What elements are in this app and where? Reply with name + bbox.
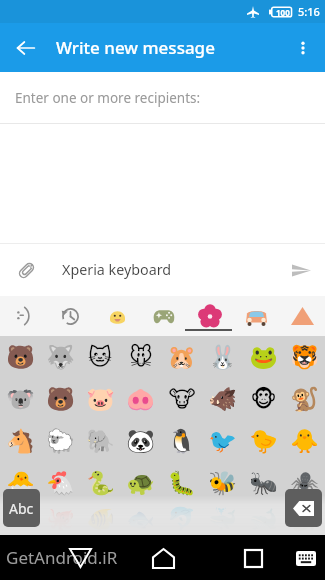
staticText: Abc [9, 499, 34, 518]
button[interactable]: 🐰 [202, 336, 243, 378]
staticText: 🐤 [249, 428, 278, 455]
staticText: 🐒 [290, 386, 319, 413]
button[interactable]: 🐠 [80, 504, 120, 535]
staticText: 🐣 [6, 470, 35, 497]
button[interactable]: Emoji category 5 [233, 296, 279, 336]
staticText: 🐠 [86, 506, 115, 533]
button[interactable]: Keyboard [288, 540, 324, 576]
button[interactable]: 🐵 [243, 378, 284, 420]
button[interactable]: 🐜 [243, 462, 284, 504]
staticText: 🐻 [46, 386, 75, 413]
button[interactable]: 🐱 [80, 336, 120, 378]
button[interactable]: 🐴 [0, 420, 40, 462]
button[interactable]: Back [10, 32, 42, 64]
button[interactable]: 🐗 [202, 378, 243, 420]
staticText: 100 [276, 7, 290, 18]
staticText: 🐚 [6, 506, 35, 533]
button[interactable]: 🐷 [80, 378, 120, 420]
button[interactable]: 🐚 [0, 504, 40, 535]
button[interactable]: 🐻 [40, 378, 80, 420]
staticText: 🐼 [126, 428, 155, 455]
staticText: 🐔 [46, 470, 75, 497]
button[interactable]: 🐦 [202, 420, 243, 462]
staticText: 🐴 [6, 428, 35, 455]
button[interactable]: Attach [10, 254, 42, 286]
button[interactable]: 🐭 [120, 336, 161, 378]
button[interactable]: 🐬 [161, 504, 202, 535]
staticText: 🐝 [208, 470, 237, 497]
button[interactable]: 🐘 [80, 420, 120, 462]
button[interactable]: 🐧 [161, 420, 202, 462]
staticText: 🐷 [86, 386, 115, 413]
button[interactable]: 🐊 [284, 504, 325, 535]
button[interactable]: Emoji category 2 [94, 296, 141, 336]
staticText: 🐜 [249, 470, 278, 497]
staticText: 🐸 [249, 344, 278, 371]
staticText: 🐦 [208, 428, 237, 455]
staticText: 🐭 [129, 344, 153, 371]
button[interactable]: 🐽 [120, 378, 161, 420]
button[interactable]: 🐝 [202, 462, 243, 504]
staticText: 🐍 [86, 470, 115, 497]
button[interactable]: Abc [3, 489, 40, 527]
staticText: 🐛 [167, 470, 196, 497]
staticText: 🐹 [167, 344, 196, 371]
button[interactable]: 🐼 [120, 420, 161, 462]
staticText: 🐧 [167, 428, 196, 455]
staticText: 🐗 [208, 386, 237, 413]
button[interactable]: 🐔 [40, 462, 80, 504]
staticText: 🐺 [46, 344, 75, 371]
button[interactable]: 🐛 [161, 462, 202, 504]
button[interactable]: 🐨 [0, 378, 40, 420]
staticText: 🐟 [126, 506, 155, 533]
button[interactable]: Emoji category 6 [279, 296, 325, 336]
button[interactable]: More options [287, 32, 319, 64]
button[interactable]: 🐺 [40, 336, 80, 378]
button[interactable]: 🐹 [161, 336, 202, 378]
staticText: Write new message [56, 36, 215, 59]
staticText: 🐙 [46, 506, 75, 533]
button[interactable]: Emoji category 4 [187, 296, 233, 336]
staticText: GetAndroid.iR [6, 546, 118, 569]
staticText: 🐰 [208, 344, 237, 371]
button[interactable]: 🐣 [0, 462, 40, 504]
button[interactable]: 🐥 [284, 420, 325, 462]
button[interactable]: 🐢 [120, 462, 161, 504]
button[interactable]: Emoji category 0 [0, 296, 47, 336]
staticText: 🐥 [290, 428, 319, 455]
staticText: 🐑 [46, 428, 75, 455]
button[interactable]: Send [285, 254, 317, 286]
staticText: 🐢 [126, 470, 155, 497]
button[interactable]: Home [145, 540, 181, 576]
button[interactable]: 🐤 [243, 420, 284, 462]
staticText: 🐳 [208, 506, 237, 533]
staticText: 🐬 [167, 506, 196, 533]
button[interactable]: 🐸 [243, 336, 284, 378]
button[interactable]: Recents [235, 540, 271, 576]
button[interactable]: 🐑 [40, 420, 80, 462]
staticText: 🐽 [126, 386, 155, 413]
staticText: 🐮 [168, 386, 196, 413]
button[interactable]: Emoji category 1 [47, 296, 94, 336]
button[interactable]: 🐮 [161, 378, 202, 420]
staticText: 🐘 [86, 428, 115, 455]
staticText: 5:16 [298, 4, 320, 19]
button[interactable]: Emoji category 3 [141, 296, 187, 336]
staticText: 🕷️ [290, 470, 319, 497]
button[interactable]: Enter one or more recipients: [0, 72, 325, 124]
staticText: 🐱 [88, 344, 112, 371]
button[interactable]: 🐻 [0, 336, 40, 378]
staticText: Enter one or more recipients: [15, 89, 201, 107]
button[interactable]: 🐯 [284, 336, 325, 378]
button[interactable]: Backspace [285, 489, 322, 527]
button[interactable]: 🐍 [80, 462, 120, 504]
button[interactable]: 🕷️ [284, 462, 325, 504]
button[interactable]: 🐒 [284, 378, 325, 420]
staticText: 🐊 [290, 506, 319, 533]
staticText: 🐨 [6, 386, 35, 413]
button[interactable]: Back [62, 540, 98, 576]
